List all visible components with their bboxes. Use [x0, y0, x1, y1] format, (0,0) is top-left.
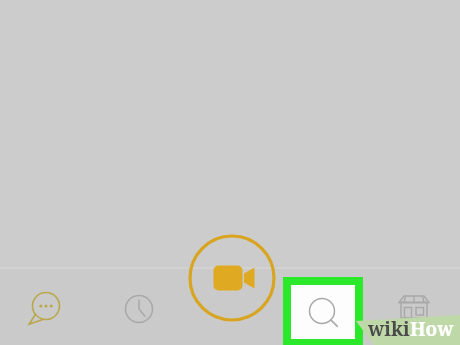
button[interactable]: New video call [188, 234, 276, 322]
staticText: wiki [368, 316, 410, 342]
button[interactable]: Chats [22, 283, 70, 331]
button[interactable]: Search [283, 277, 363, 345]
staticText: How [410, 316, 454, 342]
button[interactable]: Recents [115, 285, 163, 333]
button[interactable]: Store [390, 283, 438, 331]
